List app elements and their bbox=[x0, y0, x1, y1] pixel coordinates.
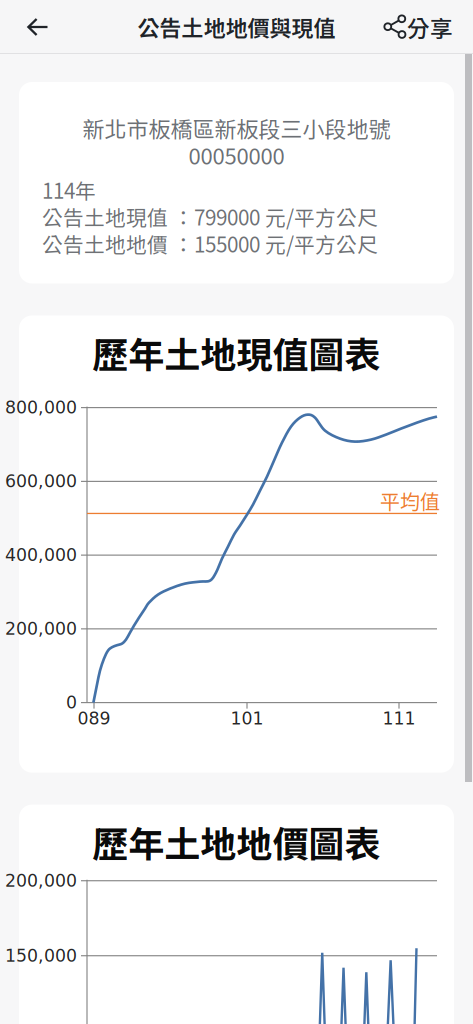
staticText: 101 bbox=[230, 708, 263, 729]
staticText: 公告土地現值 ：799000 元/平方公尺 bbox=[42, 202, 378, 231]
staticText: 111 bbox=[382, 708, 415, 729]
staticText: 200,000 bbox=[5, 619, 77, 639]
staticText: 114年 bbox=[42, 175, 96, 205]
staticText: 0 bbox=[66, 692, 77, 713]
button[interactable]: 返回 bbox=[0, 0, 62, 54]
button[interactable]: 分享 bbox=[370, 0, 473, 54]
staticText: 歷年土地現值圖表 bbox=[92, 326, 380, 379]
staticText: 00050000 bbox=[188, 139, 284, 171]
staticText: 歷年土地地價圖表 bbox=[92, 816, 380, 868]
staticText: 800,000 bbox=[5, 397, 77, 418]
staticText: 公告土地地價與現值 bbox=[137, 11, 335, 43]
staticText: 分享 bbox=[407, 11, 453, 43]
staticText: 089 bbox=[77, 708, 110, 729]
staticText: 新北市板橋區新板段三小段地號 bbox=[82, 112, 390, 144]
staticText: 平均值 bbox=[380, 486, 440, 515]
staticText: 公告土地地價 ：155000 元/平方公尺 bbox=[42, 229, 378, 258]
staticText: 400,000 bbox=[5, 545, 77, 565]
staticText: 600,000 bbox=[5, 471, 77, 491]
staticText: 150,000 bbox=[5, 946, 77, 966]
staticText: 200,000 bbox=[5, 871, 77, 891]
